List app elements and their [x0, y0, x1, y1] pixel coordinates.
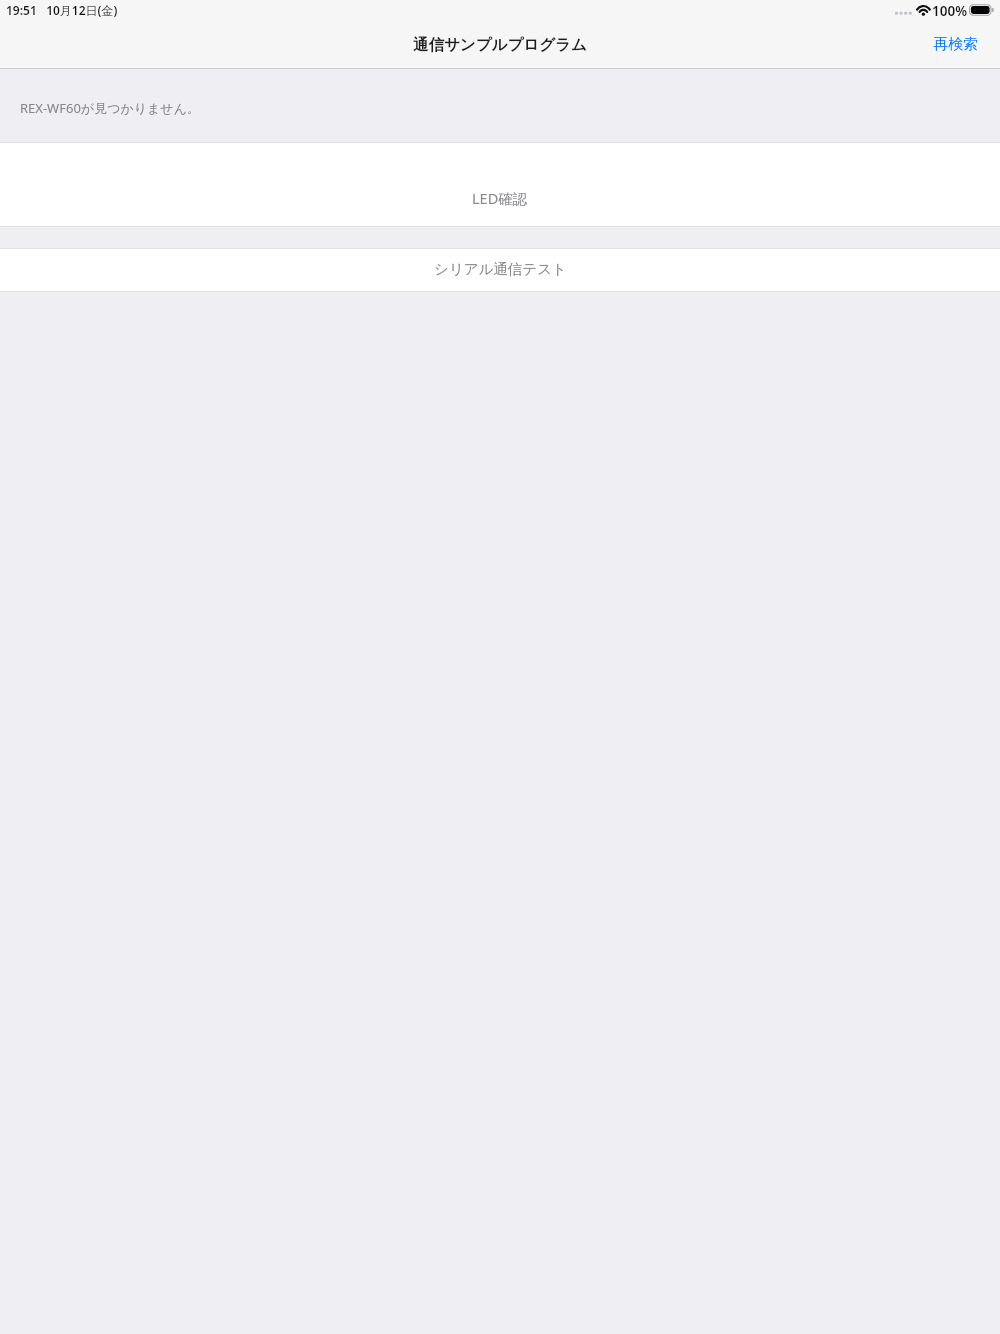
- staticText: シリアル通信テスト: [434, 260, 567, 278]
- other: Wi-Fi connected, no cellular signal: [893, 0, 933, 28]
- staticText: 19:51 10月12日(金): [6, 2, 118, 18]
- staticText: 100%: [932, 2, 967, 20]
- other: Battery 100 percent: [969, 0, 997, 28]
- staticText: LED確認: [472, 188, 528, 208]
- button[interactable]: 再検索: [911, 25, 1000, 64]
- staticText: 再検索: [933, 35, 978, 54]
- button[interactable]: シリアル通信テスト: [0, 249, 1000, 291]
- staticText: REX-WF60が見つかりません。: [20, 99, 200, 117]
- button[interactable]: LED確認: [0, 184, 1000, 226]
- staticText: 通信サンプルプログラム: [413, 35, 587, 55]
